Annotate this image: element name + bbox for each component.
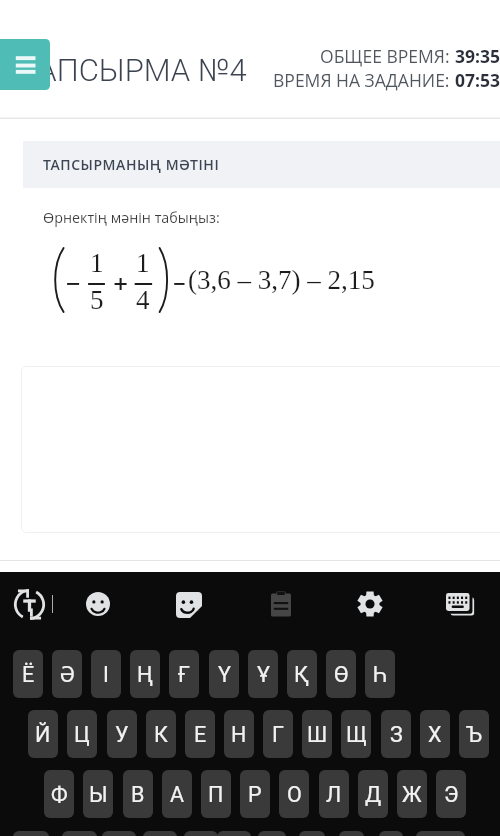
staticText: ВРЕМЯ НА ЗАДАНИЕ:	[273, 68, 455, 92]
button[interactable]: Key	[13, 831, 49, 836]
button[interactable]: Key	[258, 831, 286, 836]
button[interactable]: Ъ	[459, 710, 489, 758]
staticText: 1	[136, 248, 150, 278]
button[interactable]: Н	[224, 710, 254, 758]
button[interactable]: Key	[62, 831, 97, 836]
button[interactable]: Ы	[83, 770, 113, 818]
button[interactable]: Щ	[341, 710, 371, 758]
staticText: Р	[248, 782, 262, 807]
staticText: Щ	[346, 722, 367, 747]
button[interactable]: Ф	[44, 770, 74, 818]
staticText: І	[103, 662, 109, 687]
button[interactable]: Г	[263, 710, 293, 758]
button[interactable]: А	[162, 770, 192, 818]
button[interactable]: О	[279, 770, 309, 818]
staticText: З	[390, 722, 403, 747]
button[interactable]: Х	[420, 710, 450, 758]
staticText: ОБЩЕЕ ВРЕМЯ:	[320, 44, 455, 68]
button[interactable]: Ш	[302, 710, 332, 758]
staticText: О	[287, 782, 302, 807]
button[interactable]: Л	[319, 770, 349, 818]
button[interactable]: Қ	[287, 650, 317, 698]
button[interactable]: Ө	[326, 650, 356, 698]
staticText: Ғ	[178, 662, 190, 687]
button[interactable]: Open navigation menu	[0, 39, 50, 90]
button[interactable]: Ц	[67, 710, 97, 758]
staticText: 07:53	[455, 68, 500, 92]
button[interactable]: Key	[299, 831, 325, 836]
button[interactable]: Key	[416, 831, 465, 836]
staticText: Э	[444, 782, 459, 807]
staticText: Ө	[334, 662, 349, 687]
button[interactable]: Й	[28, 710, 58, 758]
button[interactable]: Һ	[365, 650, 395, 698]
button[interactable]: Ғ	[169, 650, 199, 698]
button[interactable]: Е	[185, 710, 215, 758]
button[interactable]: К	[146, 710, 176, 758]
button[interactable]: У	[107, 710, 137, 758]
button[interactable]: Э	[436, 770, 466, 818]
button[interactable]: Д	[358, 770, 388, 818]
button[interactable]: П	[201, 770, 231, 818]
button[interactable]: Р	[240, 770, 270, 818]
button[interactable]: Ү	[209, 650, 239, 698]
staticText: ТАПСЫРМАНЫҢ МӘТІНІ	[43, 155, 220, 174]
button[interactable]: Ң	[130, 650, 160, 698]
staticText: 5	[90, 285, 104, 315]
staticText: Ү	[218, 662, 231, 687]
staticText: Ц	[74, 722, 90, 747]
button[interactable]: Ә	[52, 650, 82, 698]
staticText: Ш	[307, 722, 328, 747]
staticText: Ъ	[466, 722, 483, 747]
button[interactable]: З	[381, 710, 411, 758]
staticText: А	[170, 782, 185, 807]
staticText: 39:35	[455, 44, 500, 68]
staticText: Д	[365, 782, 382, 807]
staticText: 4	[136, 285, 150, 315]
button[interactable]: Key	[379, 831, 403, 836]
staticText: ТАПСЫРМА №4	[20, 52, 247, 88]
staticText: Ы	[89, 782, 108, 807]
button[interactable]: Ж	[397, 770, 427, 818]
staticText: Қ	[294, 662, 310, 687]
button[interactable]: Settings	[357, 591, 383, 617]
staticText: Е	[194, 722, 207, 747]
button[interactable]: Switch keyboard	[446, 593, 474, 621]
staticText: Г	[272, 722, 284, 747]
button[interactable]: Translate	[13, 588, 46, 621]
staticText: Й	[35, 722, 51, 747]
staticText: (3,6 – 3,7) – 2,15	[188, 265, 375, 295]
staticText: Л	[326, 782, 342, 807]
staticText: Ң	[137, 662, 154, 687]
staticText: Х	[428, 722, 442, 747]
staticText: Н	[231, 722, 247, 747]
staticText: Ф	[51, 782, 68, 807]
staticText: 1	[90, 248, 104, 278]
button[interactable]: Key	[102, 831, 136, 836]
button[interactable]: Ұ	[248, 650, 278, 698]
button[interactable]: І	[91, 650, 121, 698]
staticText: П	[208, 782, 224, 807]
staticText: Ұ	[257, 662, 270, 687]
staticText: Ә	[60, 662, 75, 687]
staticText: У	[115, 722, 129, 747]
button[interactable]: Key	[143, 831, 177, 836]
button[interactable]: Clipboard	[268, 591, 294, 617]
staticText: Өрнектің мәнін табыңыз:	[43, 208, 220, 227]
staticText: К	[154, 722, 168, 747]
staticText: Һ	[373, 662, 388, 687]
staticText: В	[131, 782, 145, 807]
button[interactable]: Stickers	[176, 592, 202, 618]
button[interactable]: Key	[217, 831, 251, 836]
staticText: Ё	[22, 662, 35, 687]
button[interactable]: Key	[184, 831, 218, 836]
button[interactable]: Emoji	[86, 592, 110, 616]
button[interactable]: Ё	[13, 650, 43, 698]
button[interactable]: В	[123, 770, 153, 818]
button[interactable]: Key	[339, 831, 364, 836]
staticText: Ж	[402, 782, 422, 807]
